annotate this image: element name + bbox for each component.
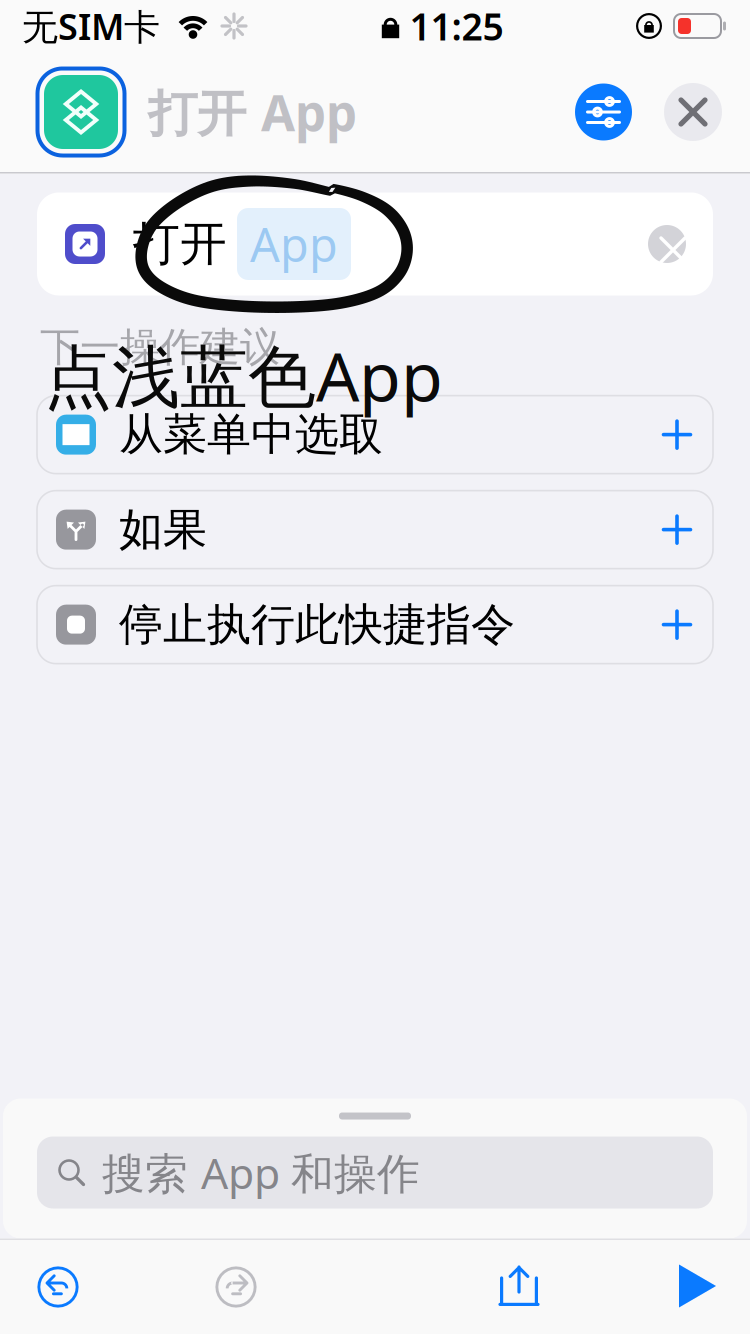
staticText: 无SIM卡 bbox=[22, 2, 160, 50]
button[interactable]: 如果 bbox=[37, 491, 713, 569]
staticText: 打开 bbox=[133, 215, 227, 273]
staticText: 停止执行此快捷指令 bbox=[119, 598, 515, 652]
button[interactable]: Run shortcut bbox=[676, 1263, 720, 1311]
button[interactable]: Undo bbox=[30, 1259, 86, 1315]
button[interactable]: 搜索 App 和操作 bbox=[37, 1136, 713, 1208]
staticText: 从菜单中选取 bbox=[119, 408, 383, 462]
button[interactable]: Remove action bbox=[648, 225, 686, 263]
button[interactable]: 打开 bbox=[37, 192, 713, 295]
staticText: App bbox=[250, 213, 338, 275]
staticText: 如果 bbox=[119, 503, 207, 557]
button[interactable]: Redo bbox=[208, 1259, 264, 1315]
staticText: 点浅蓝色App bbox=[44, 330, 443, 420]
staticText: 11:25 bbox=[409, 1, 503, 51]
button[interactable]: Close bbox=[664, 83, 722, 141]
button[interactable]: Share bbox=[498, 1261, 542, 1313]
button[interactable]: Settings bbox=[575, 83, 632, 140]
staticText: 打开 App bbox=[148, 79, 357, 145]
staticText: 下一操作建议 bbox=[40, 322, 280, 372]
button[interactable]: 停止执行此快捷指令 bbox=[37, 586, 713, 664]
staticText: 搜索 App 和操作 bbox=[102, 1144, 420, 1201]
button[interactable]: 从菜单中选取 bbox=[37, 396, 713, 474]
